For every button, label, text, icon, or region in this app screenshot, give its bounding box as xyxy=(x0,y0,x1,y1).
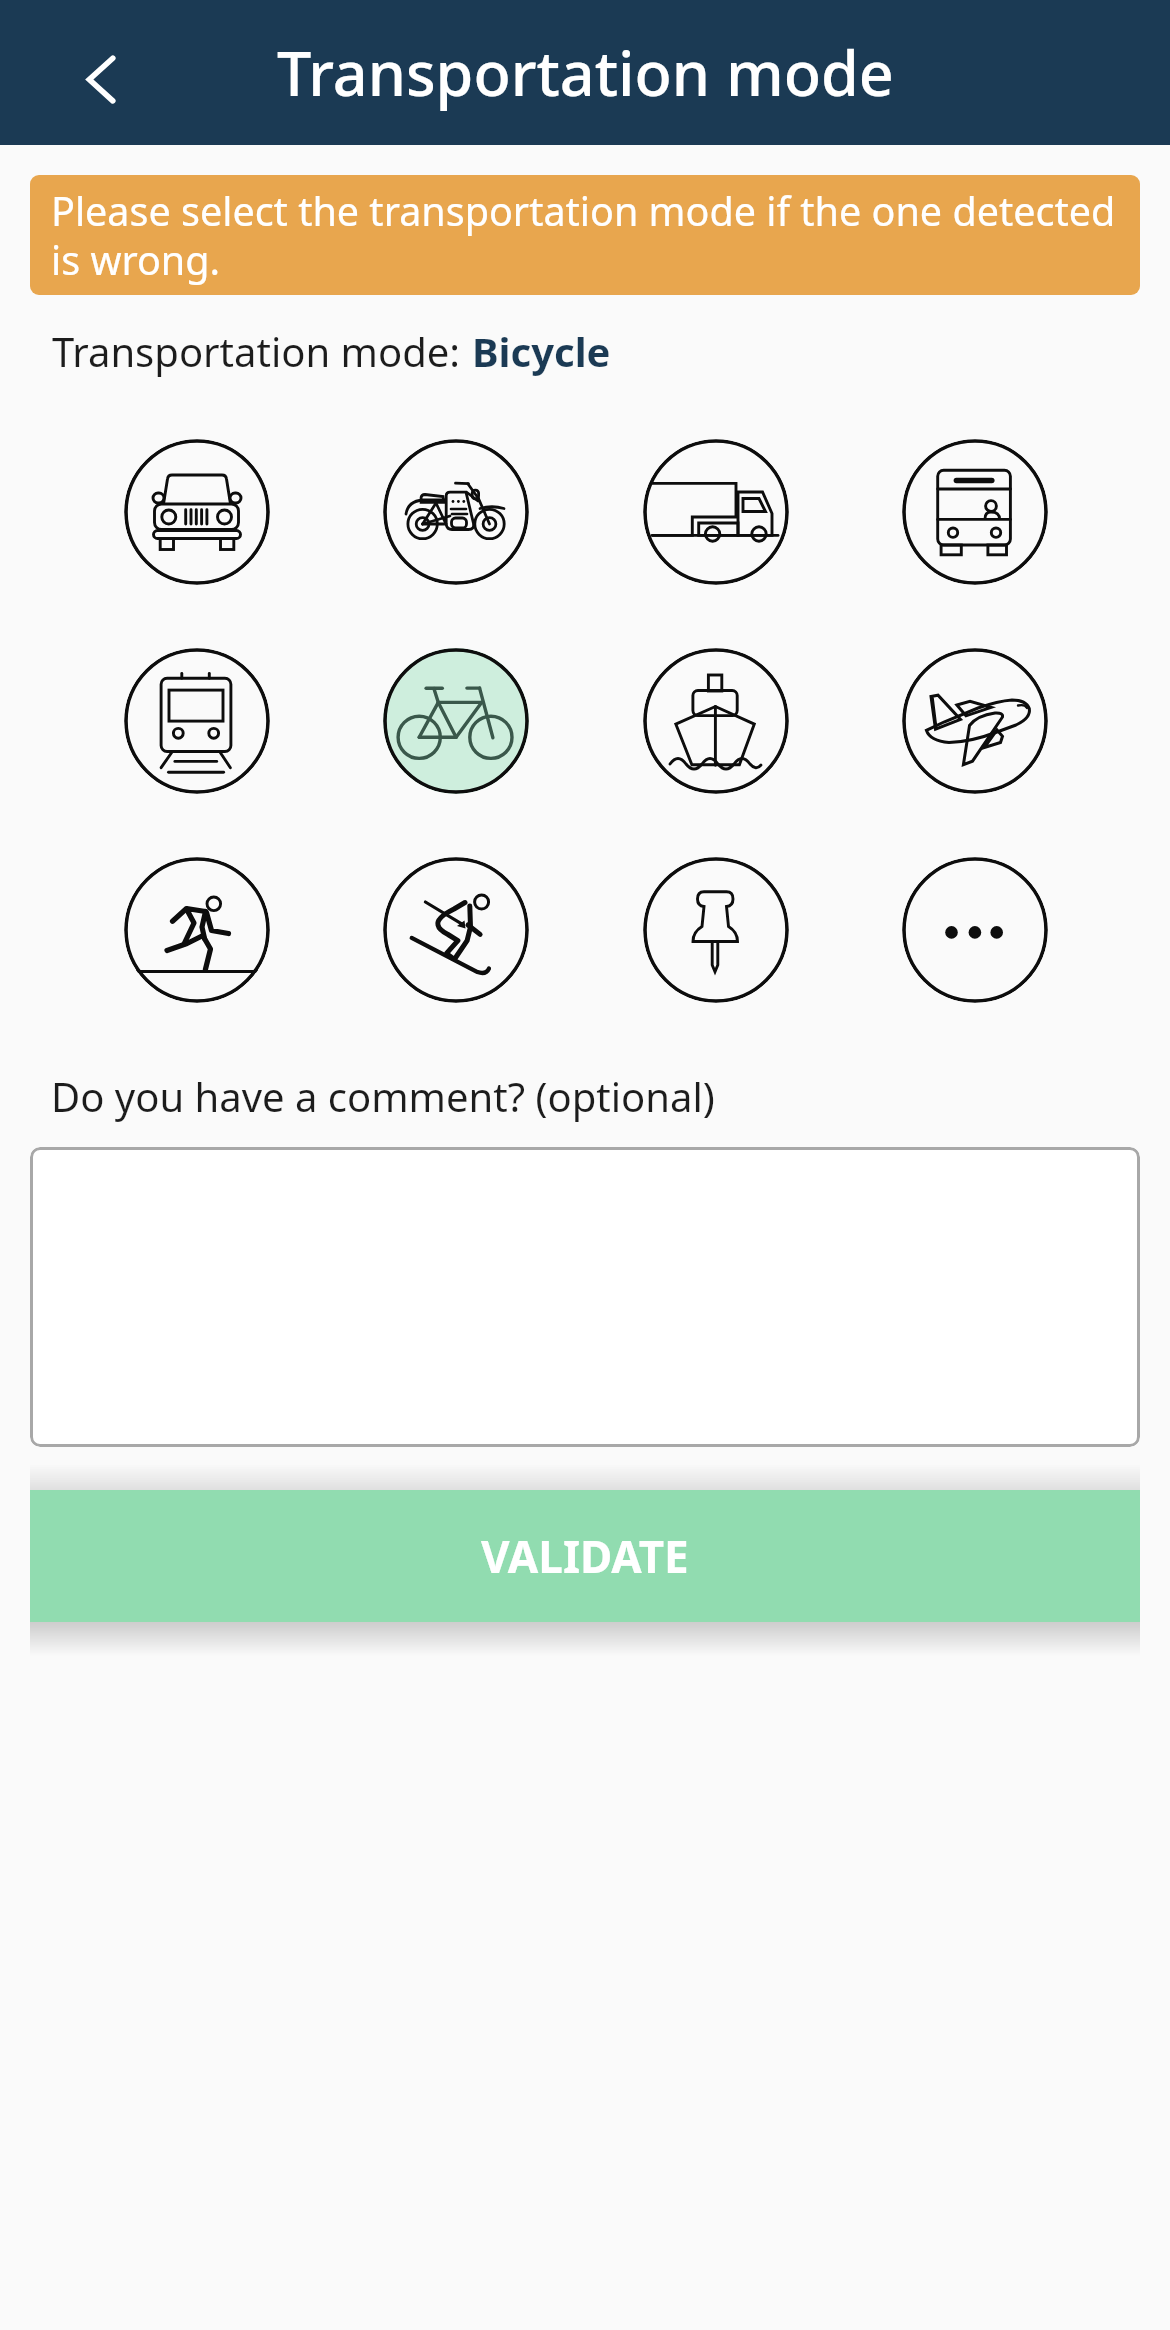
button[interactable]: Other modes xyxy=(902,857,1048,1003)
staticText: Bicycle xyxy=(472,324,611,378)
button[interactable]: Bus xyxy=(902,439,1048,585)
button[interactable]: Running xyxy=(124,857,270,1003)
button[interactable]: Back xyxy=(53,25,149,121)
button[interactable]: Train xyxy=(124,648,270,794)
button[interactable]: Motorbike xyxy=(383,439,529,585)
staticText: Transportation mode: xyxy=(52,324,461,378)
button[interactable]: Car xyxy=(124,439,270,585)
button[interactable]: Boat xyxy=(643,648,789,794)
staticText: Transportation mode xyxy=(277,31,894,114)
button[interactable]: Truck xyxy=(643,439,789,585)
button[interactable]: VALIDATE xyxy=(30,1490,1140,1622)
button[interactable]: Plane xyxy=(902,648,1048,794)
staticText: VALIDATE xyxy=(481,1526,689,1586)
button[interactable] xyxy=(30,1147,1140,1447)
staticText: Please select the transportation mode if… xyxy=(51,184,1122,286)
button[interactable]: Skiing xyxy=(383,857,529,1003)
staticText: Do you have a comment? (optional) xyxy=(51,1069,715,1123)
button[interactable]: Bicycle xyxy=(383,648,529,794)
button[interactable]: Still xyxy=(643,857,789,1003)
